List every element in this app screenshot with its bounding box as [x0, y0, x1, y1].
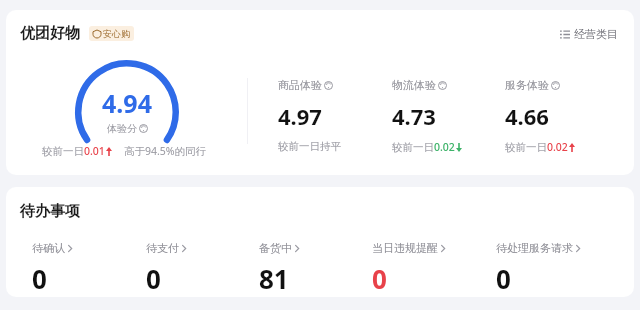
staticText: 较前一日: [392, 141, 434, 154]
staticText: 待确认: [32, 241, 65, 255]
staticText: 0.02: [547, 140, 568, 154]
button[interactable]: 物流体验: [392, 78, 505, 154]
staticText: 优团好物: [20, 24, 80, 43]
button[interactable]: 备货中: [259, 241, 372, 296]
staticText: 商品体验: [278, 78, 322, 92]
staticText: 0: [32, 261, 47, 296]
button[interactable]: 待处理服务请求: [496, 241, 620, 296]
button[interactable]: 安心购: [93, 28, 130, 39]
button[interactable]: 待支付: [146, 241, 259, 296]
button[interactable]: 经营类目: [558, 25, 620, 43]
staticText: 4.73: [392, 101, 436, 131]
staticText: 待处理服务请求: [496, 241, 573, 255]
staticText: 4.97: [278, 101, 322, 131]
staticText: 4.66: [505, 101, 549, 131]
staticText: 经营类目: [574, 27, 618, 41]
button[interactable]: 待确认: [32, 241, 146, 296]
staticText: 较前一日持平: [278, 140, 341, 153]
staticText: 较前一日: [505, 141, 547, 154]
staticText: 0: [372, 261, 387, 296]
button[interactable]: 当日违规提醒: [372, 241, 496, 296]
staticText: 当日违规提醒: [372, 241, 438, 255]
staticText: 0: [496, 261, 511, 296]
staticText: 0: [146, 261, 161, 296]
staticText: 81: [259, 261, 289, 296]
staticText: 备货中: [259, 241, 292, 255]
staticText: 0.02: [434, 140, 455, 154]
staticText: 服务体验: [505, 78, 549, 92]
staticText: 物流体验: [392, 78, 436, 92]
staticText: 4.94: [102, 86, 152, 120]
staticText: 较前一日: [42, 145, 84, 158]
staticText: 安心购: [103, 28, 130, 39]
button[interactable]: 商品体验: [278, 78, 392, 153]
staticText: 待办事项: [20, 202, 80, 221]
staticText: 待支付: [146, 241, 179, 255]
staticText: 体验分: [107, 122, 137, 134]
button[interactable]: 服务体验: [505, 78, 618, 154]
staticText: 0.01: [84, 144, 105, 158]
staticText: 高于94.5%的同行: [124, 144, 207, 158]
